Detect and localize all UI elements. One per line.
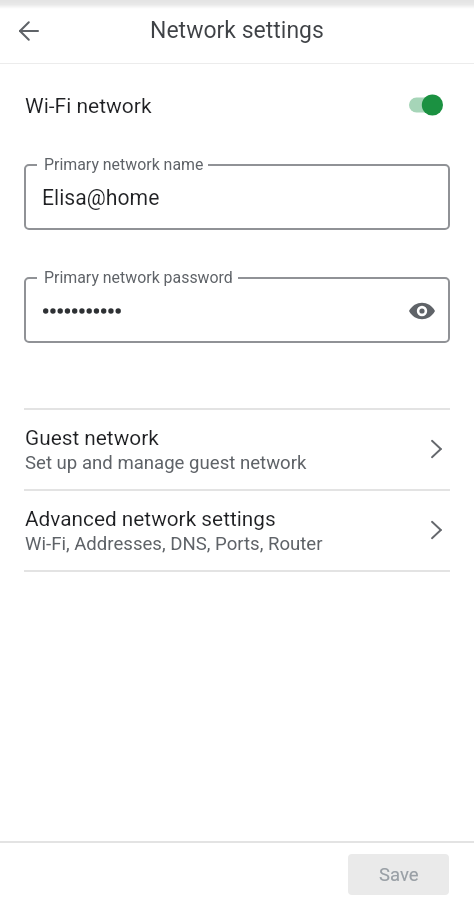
button[interactable]: Advanced network settings [0, 489, 474, 570]
staticText: Wi-Fi, Addresses, DNS, Ports, Router [25, 533, 323, 555]
button[interactable]: Show password [404, 293, 440, 329]
staticText: Primary network password [44, 268, 233, 287]
button[interactable]: Wi-Fi network [0, 64, 474, 145]
staticText: Advanced network settings [25, 507, 276, 531]
button[interactable]: Save [348, 854, 449, 895]
button[interactable]: Wi-Fi network toggle [409, 93, 443, 117]
staticText: Network settings [150, 17, 324, 44]
staticText: Primary network name [44, 155, 204, 174]
staticText: Save [379, 864, 419, 886]
button[interactable]: Guest network [0, 408, 474, 489]
staticText: Guest network [25, 426, 159, 450]
staticText: Wi-Fi network [25, 94, 152, 119]
button[interactable]: Back [9, 11, 49, 51]
staticText: Elisa@home [42, 185, 160, 210]
staticText: Set up and manage guest network [25, 452, 307, 474]
